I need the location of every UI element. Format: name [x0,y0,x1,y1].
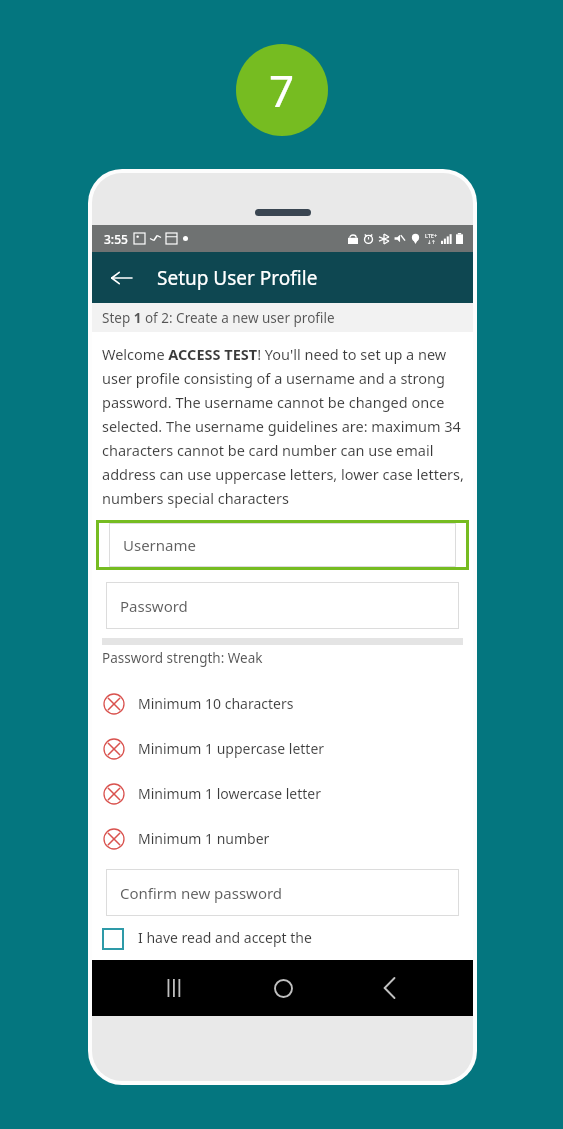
staticText: Confirm new password [120,883,283,903]
staticText: Password strength: Weak [102,649,263,667]
button[interactable]: Back [100,257,142,299]
staticText: Welcome ACCESS TEST! You'll need to set … [102,344,464,508]
staticText: Minimum 1 number [138,829,270,848]
button[interactable]: Accept terms checkbox [92,928,473,950]
staticText: 7 [269,60,295,120]
button[interactable]: Minimum 1 number [92,816,473,861]
staticText: Setup User Profile [157,265,318,291]
button[interactable]: Confirm new password [106,869,459,916]
staticText: 3:55 [104,231,128,247]
other: Accept terms checkbox [102,928,124,950]
staticText: Minimum 10 characters [138,694,294,713]
staticText: I have read and accept the [138,928,312,947]
staticText: Username [123,535,196,555]
button[interactable]: Minimum 1 lowercase letter [92,771,473,816]
button[interactable]: Recent apps [151,964,199,1012]
button[interactable]: Home [259,964,307,1012]
staticText: ↓↑ [427,239,436,245]
button[interactable]: Username [99,523,466,567]
button[interactable]: Password [106,582,459,629]
staticText: Password [120,596,188,616]
button[interactable]: Minimum 1 uppercase letter [92,726,473,771]
staticText: LTE+ [425,232,438,239]
button[interactable]: Minimum 10 characters [92,681,473,726]
staticText: Minimum 1 uppercase letter [138,739,325,758]
button[interactable]: Back [366,964,414,1012]
staticText: Step 1 of 2: Create a new user profile [102,309,335,327]
staticText: Minimum 1 lowercase letter [138,784,322,803]
